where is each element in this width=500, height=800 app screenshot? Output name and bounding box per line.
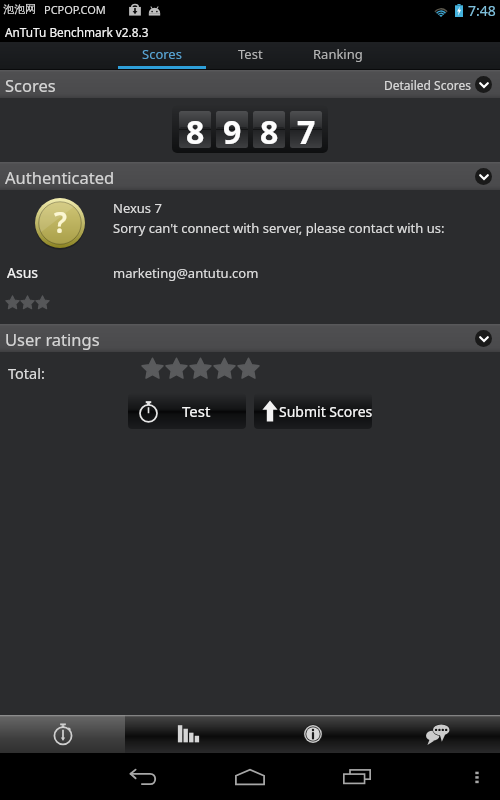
staticText: Authenticated bbox=[5, 166, 115, 188]
staticText: Total: bbox=[8, 363, 45, 383]
other: Expand bbox=[475, 76, 492, 93]
other: Expand bbox=[475, 168, 492, 185]
staticText: AnTuTu Benchmark v2.8.3 bbox=[5, 24, 149, 40]
button[interactable]: User ratings bbox=[0, 324, 500, 352]
button[interactable]: Test bbox=[0, 715, 125, 753]
button[interactable]: Comments bbox=[375, 715, 500, 753]
button[interactable]: Authenticated bbox=[0, 162, 500, 190]
button[interactable]: More options bbox=[459, 759, 495, 795]
button[interactable]: Submit Scores bbox=[254, 393, 372, 429]
staticText: Nexus 7 bbox=[113, 199, 162, 217]
staticText: Scores bbox=[142, 45, 182, 63]
button[interactable]: Ranking bbox=[294, 42, 382, 70]
staticText: Test bbox=[182, 401, 211, 421]
button[interactable]: Scores bbox=[125, 715, 250, 753]
button[interactable]: Back bbox=[120, 753, 168, 800]
staticText: PCPOP.COM bbox=[44, 2, 106, 17]
staticText: Detailed Scores bbox=[384, 77, 471, 93]
button[interactable]: Home bbox=[226, 753, 274, 800]
staticText: 7:48 bbox=[468, 1, 496, 20]
button[interactable]: Test bbox=[128, 393, 246, 429]
staticText: Submit Scores bbox=[279, 402, 372, 421]
staticText: Ranking bbox=[313, 45, 363, 63]
staticText: 8 bbox=[260, 110, 279, 147]
button[interactable]: Info bbox=[250, 715, 375, 753]
staticText: Scores bbox=[5, 74, 56, 96]
staticText: ? bbox=[54, 203, 67, 241]
staticText: Asus bbox=[7, 263, 39, 282]
staticText: Sorry can't connect with server, please … bbox=[113, 219, 445, 237]
button[interactable]: Scores bbox=[118, 42, 206, 70]
button[interactable]: Recents bbox=[333, 753, 381, 800]
button[interactable]: Scores bbox=[0, 70, 500, 98]
staticText: 8 bbox=[186, 110, 205, 147]
staticText: User ratings bbox=[5, 328, 100, 350]
button[interactable]: Test bbox=[206, 42, 294, 70]
staticText: Test bbox=[238, 45, 263, 63]
other: Expand bbox=[475, 330, 492, 347]
staticText: 7 bbox=[297, 110, 316, 147]
staticText: 泡泡网 bbox=[3, 2, 36, 16]
staticText: 9 bbox=[223, 110, 242, 147]
staticText: marketing@antutu.com bbox=[113, 264, 259, 282]
